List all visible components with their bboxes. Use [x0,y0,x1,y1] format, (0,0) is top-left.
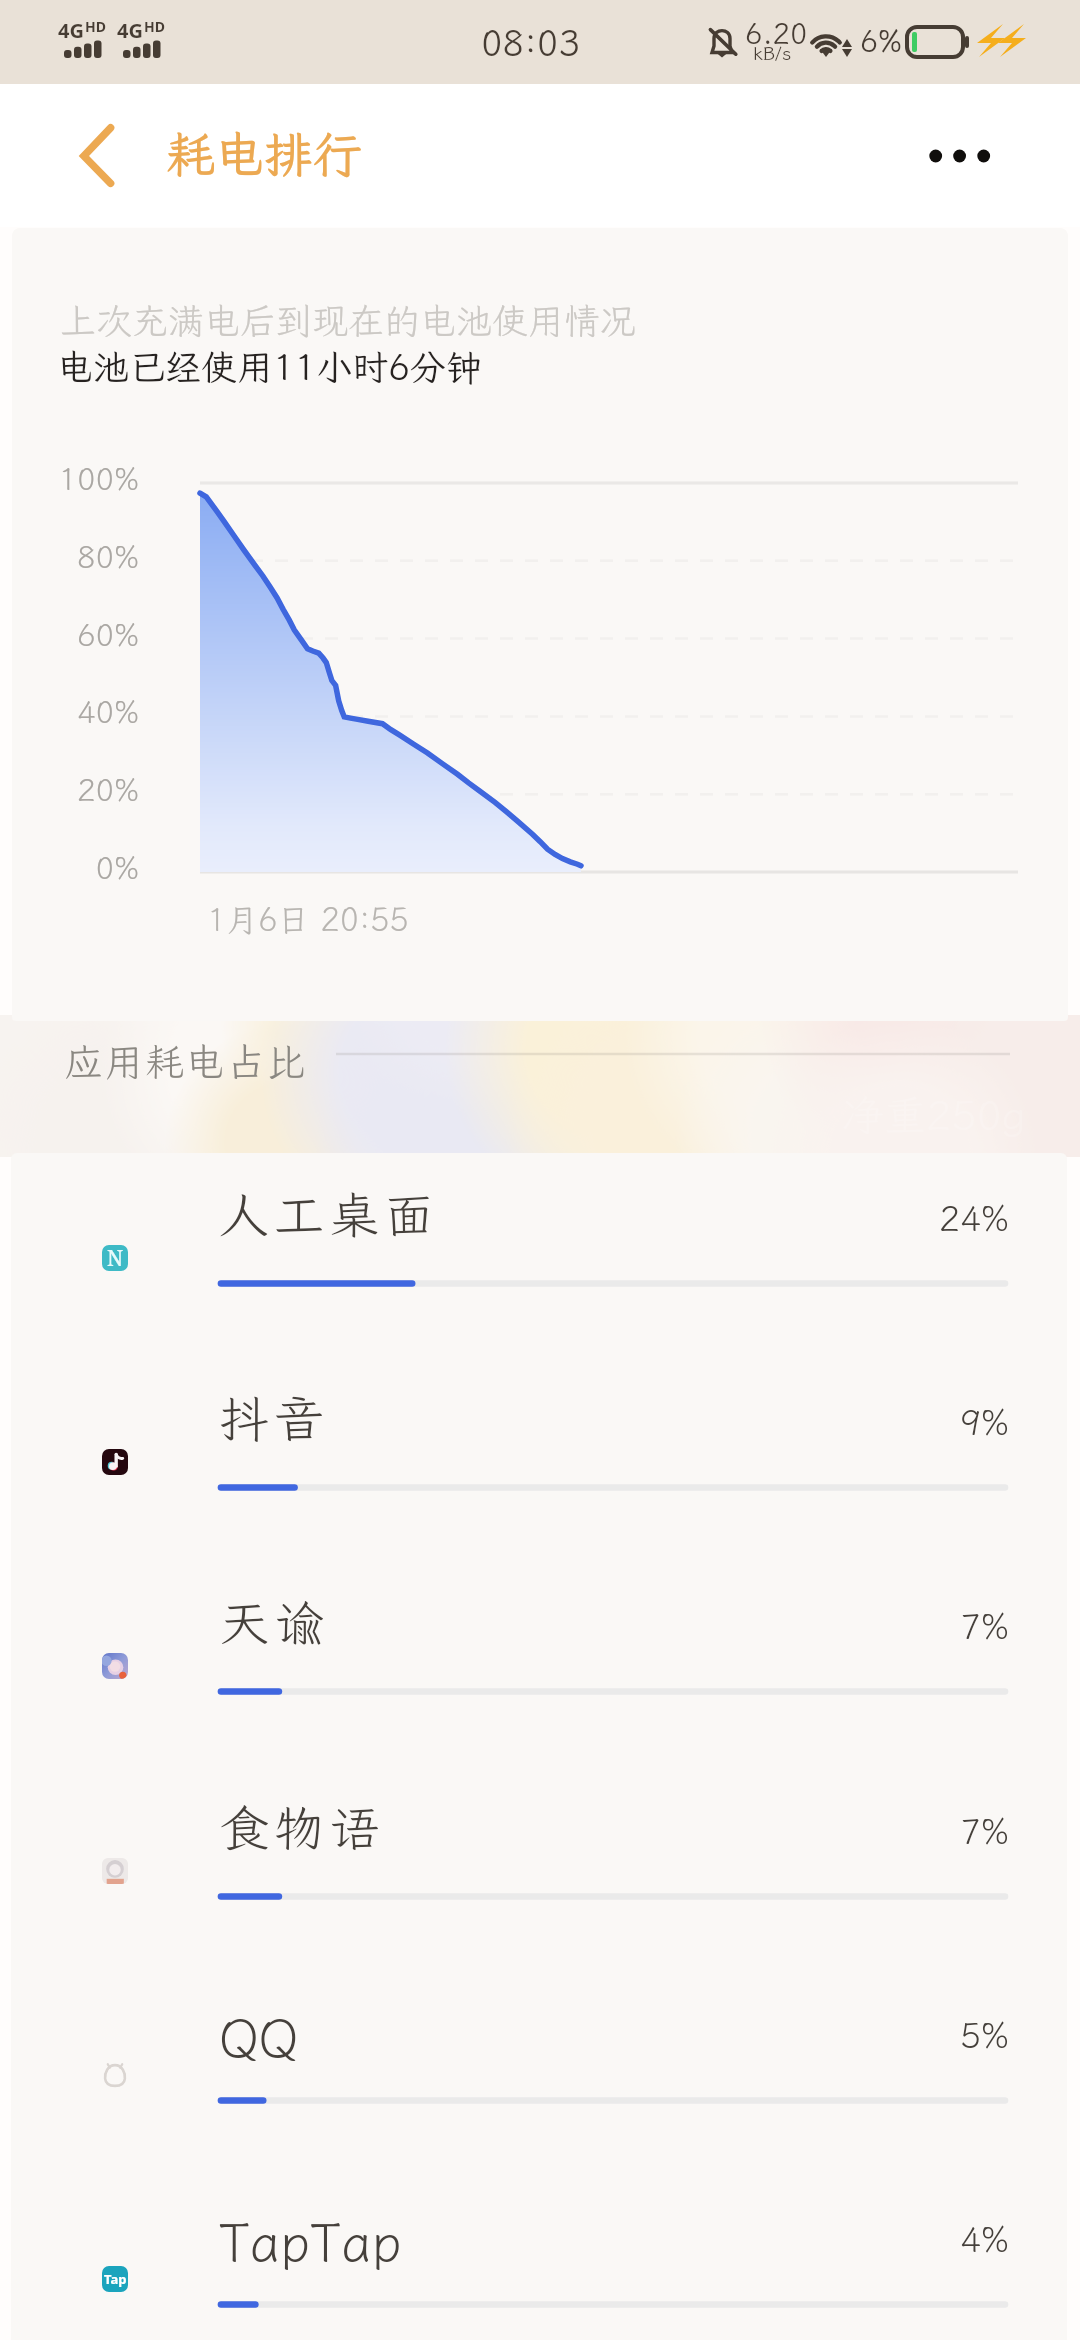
button[interactable]: More options [906,108,1014,204]
staticText: 24% [11,1195,1009,1241]
staticText: HD [144,17,165,36]
button[interactable]: 天谕 [11,1561,1067,1765]
staticText: 7% [11,1808,1009,1854]
button[interactable]: 食物语 [11,1766,1067,1970]
staticText: 0% [12,847,139,888]
staticText: 耗电排行 [166,121,363,186]
button[interactable]: N [11,1153,1067,1357]
button[interactable]: Back [56,104,140,200]
staticText: 食物语 [219,1794,384,1860]
staticText: 4% [11,2216,1009,2262]
staticText: 80% [12,536,139,577]
staticText: kB/s [753,40,792,65]
staticText: 08:03 [481,19,581,66]
staticText: 天谕 [219,1589,329,1655]
staticText: 4G [117,17,143,44]
staticText: 应用耗电占比 [64,1036,308,1087]
staticText: 100% [12,458,139,499]
staticText: QQ [219,2002,298,2072]
staticText: 20% [12,769,139,810]
staticText: 4G [58,17,84,44]
staticText: 7% [11,1603,1009,1649]
button[interactable]: QQ [11,1970,1067,2174]
staticText: N [107,1245,124,1270]
staticText: Tap [104,2270,127,2288]
staticText: 9% [11,1399,1009,1445]
staticText: 6.20 [745,14,808,52]
button[interactable]: Tap [11,2174,1067,2340]
staticText: 40% [12,691,139,732]
staticText: TapTap [219,2206,402,2276]
staticText: 1月6日 20:55 [207,898,409,940]
button[interactable]: 抖音 [11,1357,1067,1561]
staticText: 5% [11,2012,1009,2058]
staticText: 60% [12,614,139,655]
staticText: 6% [860,21,902,61]
staticText: 电池已经使用11小时6分钟 [57,343,482,390]
staticText: 上次充满电后到现在的电池使用情况 [60,297,637,344]
staticText: 人工桌面 [219,1181,439,1247]
staticText: 抖音 [219,1385,329,1451]
staticText: HD [85,17,106,36]
